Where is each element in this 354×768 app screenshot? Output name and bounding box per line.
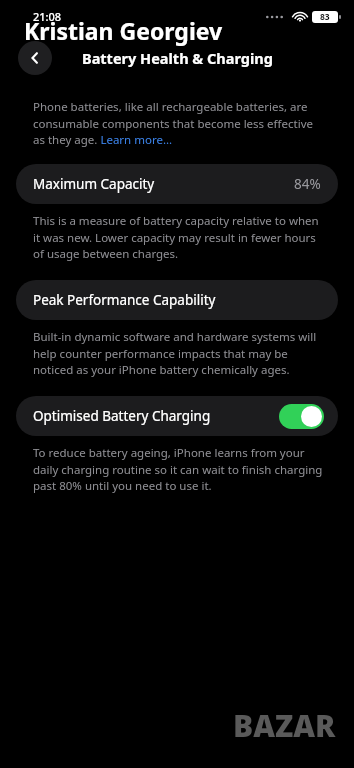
button[interactable]: Optimised Battery Charging	[16, 396, 338, 436]
button[interactable]: Optimised Battery Charging toggle	[279, 404, 324, 429]
staticText: 84%	[294, 175, 321, 193]
button[interactable]: Back	[18, 41, 52, 75]
staticText: Built-in dynamic software and hardware s…	[33, 329, 326, 377]
staticText: Maximum Capacity	[33, 175, 155, 193]
button[interactable]: Peak Performance Capability	[16, 280, 338, 320]
staticText: 21:08	[33, 9, 62, 24]
staticText: Peak Performance Capability	[33, 291, 216, 309]
staticText: Optimised Battery Charging	[33, 407, 211, 425]
staticText: 83	[320, 11, 330, 23]
staticText: To reduce battery ageing, iPhone learns …	[33, 445, 326, 493]
staticText: Phone batteries, like all rechargeable b…	[33, 99, 326, 147]
staticText: This is a measure of battery capacity re…	[33, 213, 326, 261]
staticText: Kristian Georgiev	[24, 15, 223, 46]
button[interactable]: Maximum Capacity	[16, 164, 338, 204]
staticText: Battery Health & Charging	[82, 48, 273, 68]
staticText: BAZAR	[233, 705, 336, 746]
